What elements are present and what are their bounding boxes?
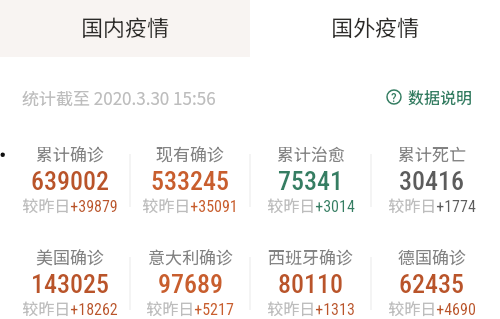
staticText: 75341 xyxy=(278,166,343,196)
button[interactable]: 累计治愈 xyxy=(251,141,370,219)
other: 数据说明 xyxy=(386,89,402,105)
staticText: 较昨日+3014 xyxy=(267,193,355,216)
button[interactable]: 美国确诊 xyxy=(11,244,129,319)
staticText: 30416 xyxy=(399,166,464,196)
staticText: 143025 xyxy=(31,269,109,299)
staticText: 80110 xyxy=(278,269,343,299)
staticText: ? xyxy=(391,90,397,105)
staticText: 累计确诊 xyxy=(36,141,104,166)
staticText: 现有确诊 xyxy=(156,141,224,166)
button[interactable]: 西班牙确诊 xyxy=(251,244,370,319)
staticText: 国外疫情 xyxy=(331,10,420,42)
button[interactable]: 国内疫情 xyxy=(0,0,250,57)
staticText: 累计死亡 xyxy=(398,141,466,166)
staticText: 德国确诊 xyxy=(398,244,466,269)
button[interactable]: 现有确诊 xyxy=(131,141,249,219)
button[interactable]: 数据说明 xyxy=(386,85,473,108)
staticText: 62435 xyxy=(399,269,464,299)
staticText: 国内疫情 xyxy=(81,10,170,42)
staticText: 累计治愈 xyxy=(277,141,345,166)
staticText: 较昨日+39879 xyxy=(22,193,118,216)
staticText: 意大利确诊 xyxy=(148,244,233,269)
staticText: 较昨日+35091 xyxy=(142,193,238,216)
staticText: 西班牙确诊 xyxy=(268,244,353,269)
button[interactable]: 累计死亡 xyxy=(372,141,491,219)
staticText: 639002 xyxy=(31,166,109,196)
button[interactable]: 国外疫情 xyxy=(250,0,500,57)
button[interactable]: 累计确诊 xyxy=(11,141,129,219)
staticText: 533245 xyxy=(151,166,229,196)
staticText: 较昨日+4690 xyxy=(388,296,476,319)
staticText: 数据说明 xyxy=(408,85,473,108)
staticText: 统计截至 2020.3.30 15:56 xyxy=(22,85,216,110)
staticText: 较昨日+1313 xyxy=(267,296,355,319)
button[interactable]: 德国确诊 xyxy=(372,244,491,319)
staticText: 97689 xyxy=(158,269,223,299)
staticText: 较昨日+1774 xyxy=(388,193,476,216)
staticText: 较昨日+18262 xyxy=(22,296,118,319)
staticText: 较昨日+5217 xyxy=(146,296,234,319)
staticText: 美国确诊 xyxy=(36,244,104,269)
button[interactable]: 意大利确诊 xyxy=(131,244,249,319)
